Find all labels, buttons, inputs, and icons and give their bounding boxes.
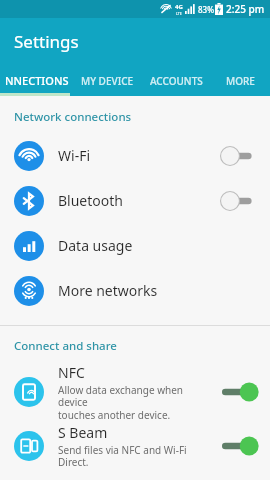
staticText: NNECTIONS (5, 73, 69, 88)
staticText: Settings (14, 30, 79, 53)
staticText: NFC (58, 363, 85, 382)
staticText: Wi-Fi (58, 146, 91, 165)
staticText: Data usage (58, 236, 133, 255)
staticText: MY DEVICE (81, 74, 134, 88)
staticText: Network connections (14, 109, 132, 125)
button[interactable]: Bluetooth (0, 178, 270, 223)
button[interactable]: MORE (211, 65, 270, 96)
staticText: LTE (176, 11, 182, 16)
staticText: S Beam (58, 423, 108, 442)
staticText: MORE (226, 74, 255, 88)
button[interactable]: NFC (0, 362, 270, 422)
staticText: 2:25 pm (226, 2, 265, 16)
staticText: Connect and share (14, 338, 117, 354)
staticText: Bluetooth (58, 191, 123, 210)
staticText: Send files via NFC and Wi-Fi Direct. (58, 443, 212, 469)
button[interactable]: Data usage (0, 223, 270, 268)
staticText: More networks (58, 281, 158, 300)
button[interactable]: Toggle off (218, 145, 258, 167)
staticText: Allow data exchange when device touches … (58, 383, 212, 422)
button[interactable]: ACCOUNTS (142, 65, 211, 96)
button[interactable]: Toggle on (218, 435, 258, 457)
staticText: ACCOUNTS (150, 74, 203, 88)
staticText: 83% (198, 4, 214, 15)
button[interactable]: Toggle on (218, 381, 258, 403)
staticText: 4G (175, 3, 183, 11)
button[interactable]: S Beam (0, 422, 270, 470)
button[interactable]: More networks (0, 268, 270, 313)
button[interactable]: Toggle off (218, 190, 258, 212)
button[interactable]: NNECTIONS (0, 65, 73, 96)
button[interactable]: Wi-Fi (0, 133, 270, 178)
button[interactable]: MY DEVICE (73, 65, 142, 96)
